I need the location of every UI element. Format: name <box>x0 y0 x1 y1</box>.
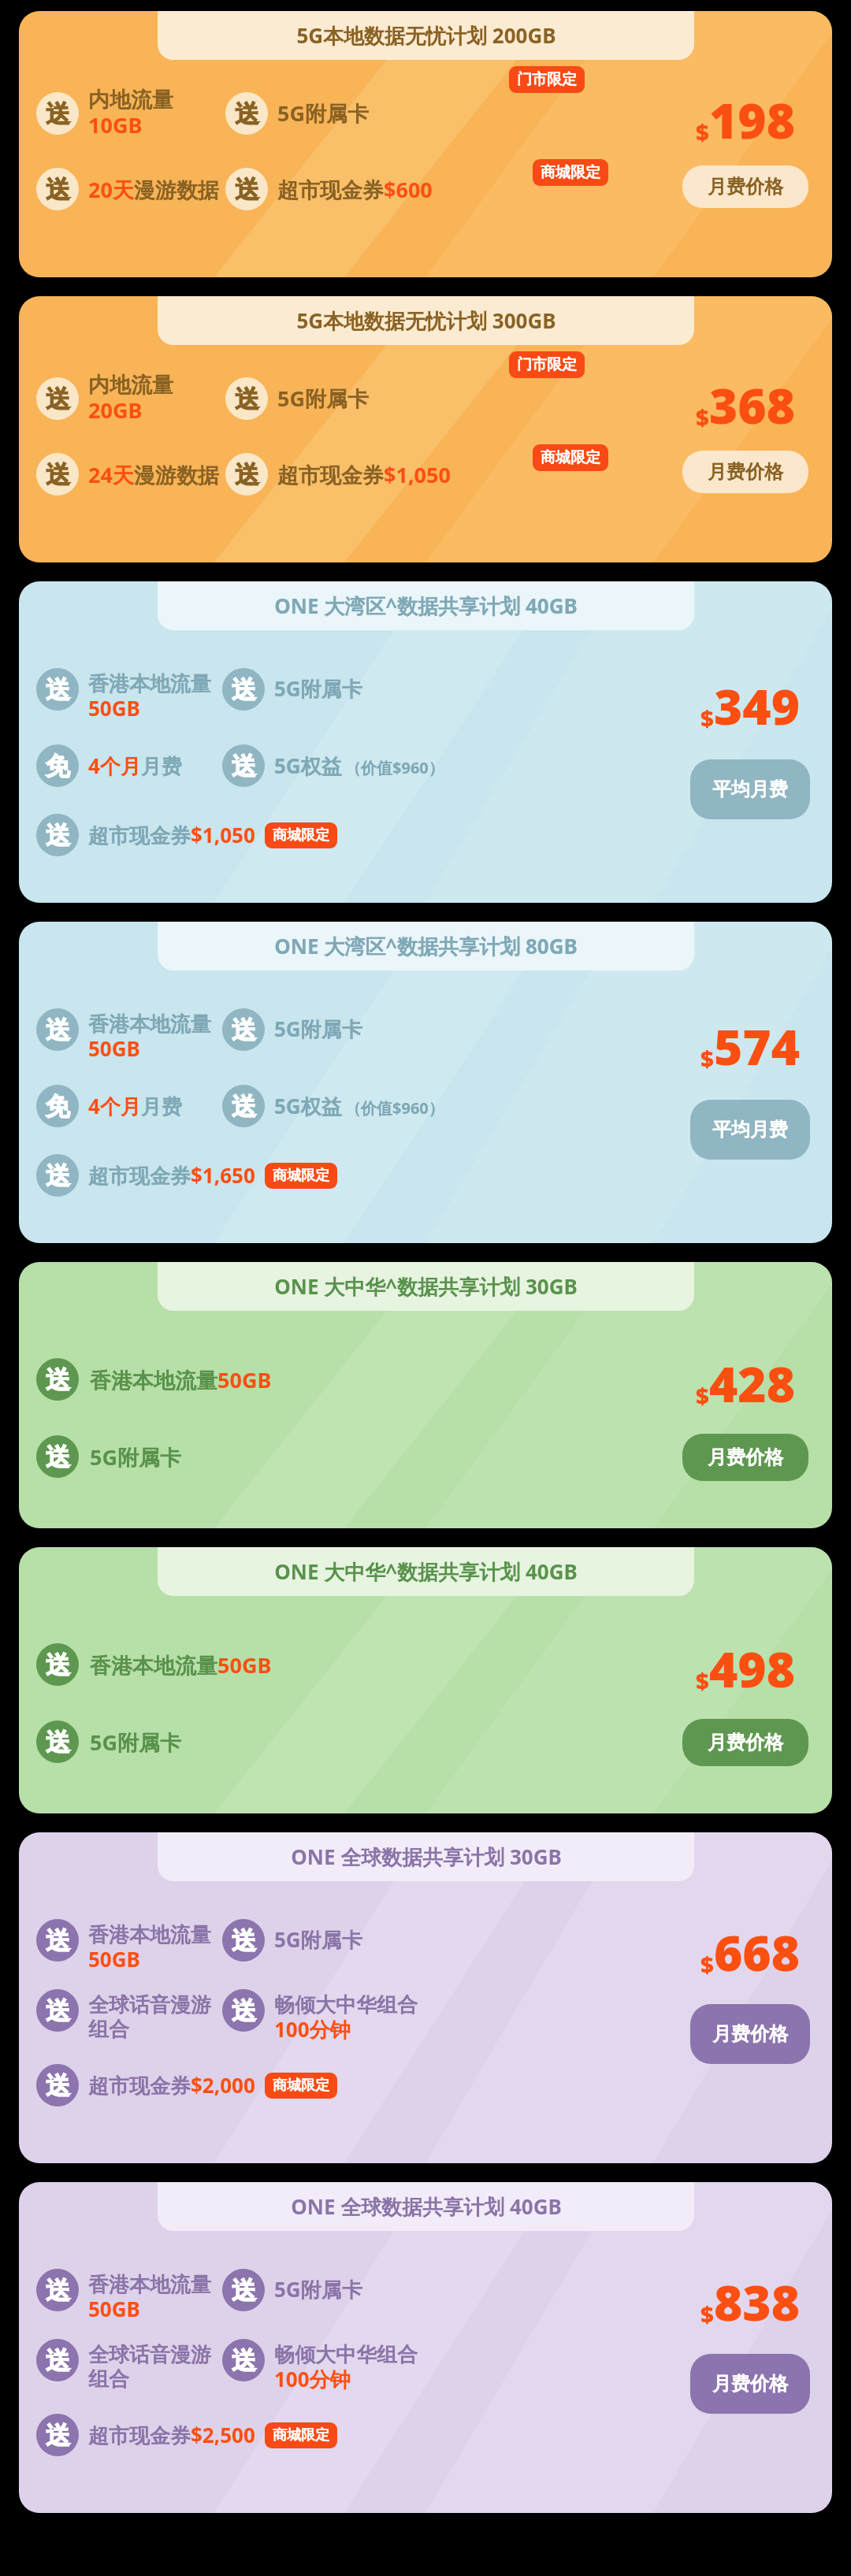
staticText: 商城限定 <box>273 2077 329 2095</box>
staticText: 月费价格 <box>708 460 783 484</box>
staticText: 送 <box>232 1015 256 1045</box>
button[interactable]: ONE 大湾区^数据共享计划 40GB <box>19 581 832 903</box>
staticText: 畅倾大中华组合 100分钟 <box>274 2342 418 2393</box>
staticText: 送 <box>232 1091 256 1122</box>
staticText: 5G本地数据无忧计划 200GB <box>296 21 556 50</box>
staticText: 5G附属卡 <box>277 98 369 128</box>
staticText: 5G附属卡 <box>90 1442 181 1472</box>
staticText: 送 <box>46 174 70 205</box>
button[interactable]: ONE 大中华^数据共享计划 40GB <box>19 1547 832 1813</box>
staticText: 4个月月费 <box>88 1092 216 1120</box>
staticText: 送 <box>46 98 70 129</box>
button[interactable]: 月费价格 <box>690 2004 810 2064</box>
staticText: 送 <box>46 1727 70 1758</box>
staticText: $ <box>696 117 709 147</box>
staticText: 香港本地流量 50GB <box>88 2272 216 2323</box>
staticText: 送 <box>46 2275 70 2306</box>
staticText: 超市现金券$1,050 <box>277 460 451 489</box>
staticText: 送 <box>46 674 70 705</box>
staticText: 5G附属卡 <box>277 384 369 413</box>
staticText: 送 <box>46 1995 70 2026</box>
staticText: ONE 大湾区^数据共享计划 80GB <box>274 932 578 960</box>
staticText: 送 <box>46 1160 70 1191</box>
button[interactable]: ONE 全球数据共享计划 30GB <box>19 1832 832 2163</box>
staticText: 送 <box>46 1925 70 1956</box>
staticText: 24天漫游数据 <box>88 460 221 489</box>
staticText: 送 <box>46 1364 70 1395</box>
staticText: 月费价格 <box>708 1731 783 1754</box>
staticText: 349 <box>714 673 800 739</box>
staticText: 送 <box>235 459 259 490</box>
staticText: $ <box>700 1043 714 1074</box>
button[interactable]: 月费价格 <box>690 2354 810 2414</box>
staticText: 免 <box>46 751 70 781</box>
staticText: 全球话音漫游 组合 <box>88 2342 216 2392</box>
staticText: 5G附属卡 <box>90 1728 181 1757</box>
staticText: 5G权益 <box>274 752 342 780</box>
staticText: 5G附属卡 <box>274 674 362 703</box>
staticText: $ <box>700 703 714 733</box>
button[interactable]: 月费价格 <box>682 1719 808 1766</box>
staticText: 商城限定 <box>273 2426 329 2444</box>
staticText: 668 <box>714 1919 800 1985</box>
staticText: 20天漫游数据 <box>88 175 221 204</box>
staticText: 送 <box>46 1650 70 1680</box>
staticText: 香港本地流量 50GB <box>88 1011 216 1063</box>
button[interactable]: 平均月费 <box>690 759 810 819</box>
staticText: 送 <box>235 98 259 129</box>
staticText: 838 <box>714 2269 800 2335</box>
staticText: ONE 大中华^数据共享计划 40GB <box>274 1557 578 1586</box>
staticText: 商城限定 <box>273 826 329 844</box>
button[interactable]: 5G本地数据无忧计划 300GB <box>19 296 832 562</box>
staticText: 4个月月费 <box>88 752 216 780</box>
button[interactable]: ONE 大中华^数据共享计划 30GB <box>19 1262 832 1528</box>
staticText: （价值$960） <box>345 757 444 778</box>
staticText: ONE 全球数据共享计划 40GB <box>291 2192 562 2221</box>
staticText: 送 <box>46 384 70 414</box>
button[interactable]: 月费价格 <box>682 451 808 493</box>
staticText: 商城限定 <box>541 163 600 182</box>
staticText: 428 <box>709 1350 795 1416</box>
staticText: 送 <box>46 1442 70 1472</box>
button[interactable]: 月费价格 <box>682 1434 808 1481</box>
staticText: 5G本地数据无忧计划 300GB <box>296 306 556 335</box>
staticText: 月费价格 <box>708 175 783 199</box>
staticText: 畅倾大中华组合 100分钟 <box>274 1992 418 2043</box>
staticText: 全球话音漫游 组合 <box>88 1992 216 2043</box>
staticText: 送 <box>235 174 259 205</box>
button[interactable]: 5G本地数据无忧计划 200GB <box>19 11 832 277</box>
staticText: $ <box>696 1380 709 1411</box>
staticText: 送 <box>232 2345 256 2376</box>
staticText: 5G附属卡 <box>274 2275 362 2303</box>
staticText: 送 <box>232 1995 256 2026</box>
staticText: 超市现金券$2,000 <box>88 2071 255 2099</box>
staticText: 送 <box>232 751 256 781</box>
staticText: 5G附属卡 <box>274 1925 362 1954</box>
staticText: 香港本地流量 50GB <box>88 1922 216 1973</box>
button[interactable]: 平均月费 <box>690 1100 810 1160</box>
staticText: ONE 全球数据共享计划 30GB <box>291 1843 562 1871</box>
staticText: 平均月费 <box>712 778 788 801</box>
button[interactable]: ONE 全球数据共享计划 40GB <box>19 2182 832 2513</box>
staticText: 5G权益 <box>274 1092 342 1120</box>
staticText: 门市限定 <box>517 70 577 89</box>
staticText: 超市现金券$1,650 <box>88 1161 255 1190</box>
staticText: 商城限定 <box>541 448 600 467</box>
staticText: 超市现金券$600 <box>277 175 433 204</box>
staticText: 送 <box>46 820 70 851</box>
staticText: 香港本地流量50GB <box>90 1365 272 1394</box>
staticText: 送 <box>46 2420 70 2451</box>
staticText: 送 <box>235 384 259 414</box>
staticText: 送 <box>46 2070 70 2101</box>
staticText: 送 <box>232 1925 256 1956</box>
staticText: 送 <box>46 1015 70 1045</box>
button[interactable]: 月费价格 <box>682 165 808 208</box>
button[interactable]: ONE 大湾区^数据共享计划 80GB <box>19 922 832 1243</box>
staticText: 574 <box>714 1013 800 1079</box>
staticText: 月费价格 <box>712 2372 788 2396</box>
staticText: 香港本地流量 50GB <box>88 671 216 722</box>
staticText: 免 <box>46 1091 70 1122</box>
staticText: 超市现金券$2,500 <box>88 2421 255 2449</box>
staticText: $ <box>700 2299 714 2329</box>
staticText: 498 <box>709 1635 795 1702</box>
